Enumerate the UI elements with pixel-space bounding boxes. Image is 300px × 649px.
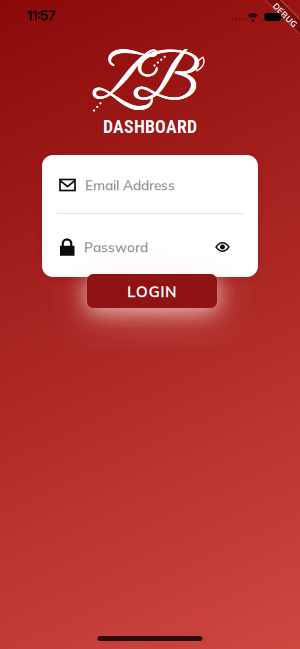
button[interactable]: Show password	[210, 235, 234, 259]
staticText: ZB	[92, 46, 196, 121]
button[interactable]: LOGIN	[87, 274, 217, 308]
staticText: DASHBOARD	[103, 116, 197, 137]
staticText: Email Address	[85, 176, 175, 194]
button[interactable]: Email Address	[42, 168, 258, 202]
staticText: 11:57	[27, 7, 55, 24]
staticText: Password	[84, 238, 148, 256]
staticText: LOGIN	[127, 282, 177, 301]
button[interactable]: Password	[42, 229, 258, 265]
staticText: ZB	[92, 45, 196, 120]
staticText: DEBUG	[271, 10, 300, 21]
staticText: ZB	[92, 46, 196, 121]
staticText: ZB	[92, 45, 196, 120]
